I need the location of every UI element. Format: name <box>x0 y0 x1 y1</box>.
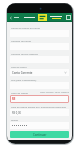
button[interactable]: Menu <box>64 13 72 22</box>
staticText: CPF (sem o separador) <box>11 78 37 81</box>
button[interactable]: Número da sua Agência <box>7 50 72 63</box>
staticText: Número da sua Agência <box>11 52 38 55</box>
staticText: R$ 0,00 <box>12 111 21 115</box>
staticText: Conta Corrente <box>12 71 33 75</box>
button[interactable]: Continuar <box>10 131 69 138</box>
button[interactable] <box>21 13 37 22</box>
staticText: Continuar <box>33 133 47 137</box>
staticText: Tipo da Conta <box>11 65 27 68</box>
button[interactable]: Back <box>7 13 21 22</box>
staticText: Valor Mínimo Valor Máximo <box>40 91 69 94</box>
button[interactable]: Número da Conta <box>7 37 72 50</box>
button[interactable]: Senha <box>7 116 72 129</box>
button[interactable] <box>47 13 64 22</box>
staticText: Taxa de Saque devido por Transferência B… <box>11 105 66 108</box>
button[interactable]: Nome do Titular da Conta <box>7 24 72 37</box>
other: Back <box>9 16 13 20</box>
staticText: R$ <box>12 97 16 101</box>
other: Expand account type <box>64 71 67 74</box>
button[interactable]: Tipo da Conta <box>7 63 72 76</box>
staticText: Nome do Titular da Conta <box>11 26 40 29</box>
button[interactable]: Home <box>37 13 47 22</box>
staticText: Número da Conta <box>11 39 31 42</box>
staticText: Senha <box>11 118 18 121</box>
button[interactable]: CPF (sem o separador) <box>7 76 72 89</box>
button[interactable]: Valor do Saque <box>7 89 72 103</box>
button[interactable]: Taxa de Saque devido por Transferência B… <box>7 103 72 116</box>
staticText: Valor do Saque <box>11 91 28 94</box>
